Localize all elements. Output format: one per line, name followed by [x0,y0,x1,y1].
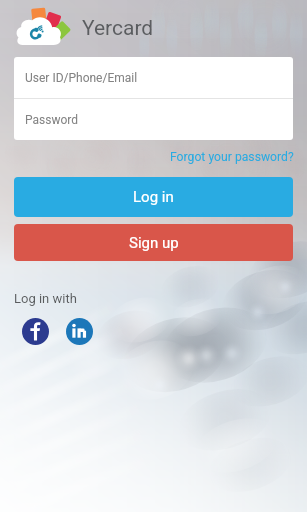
button[interactable]: Forgot your password? [168,148,296,166]
button[interactable]: Sign up [14,224,293,261]
staticText: Log in [133,188,174,206]
staticText: Yercard [82,16,154,41]
button[interactable]: Log in with Facebook [22,318,49,345]
staticText: Forgot your password? [170,150,294,164]
button[interactable]: User ID/Phone/Email [14,57,293,98]
button[interactable]: Log in with LinkedIn [66,318,93,345]
staticText: Sign up [129,234,179,252]
button[interactable]: Log in [14,177,293,217]
staticText: Password [25,113,79,127]
button[interactable]: Password [14,99,293,140]
staticText: Log in with [14,291,77,306]
staticText: User ID/Phone/Email [25,71,138,85]
